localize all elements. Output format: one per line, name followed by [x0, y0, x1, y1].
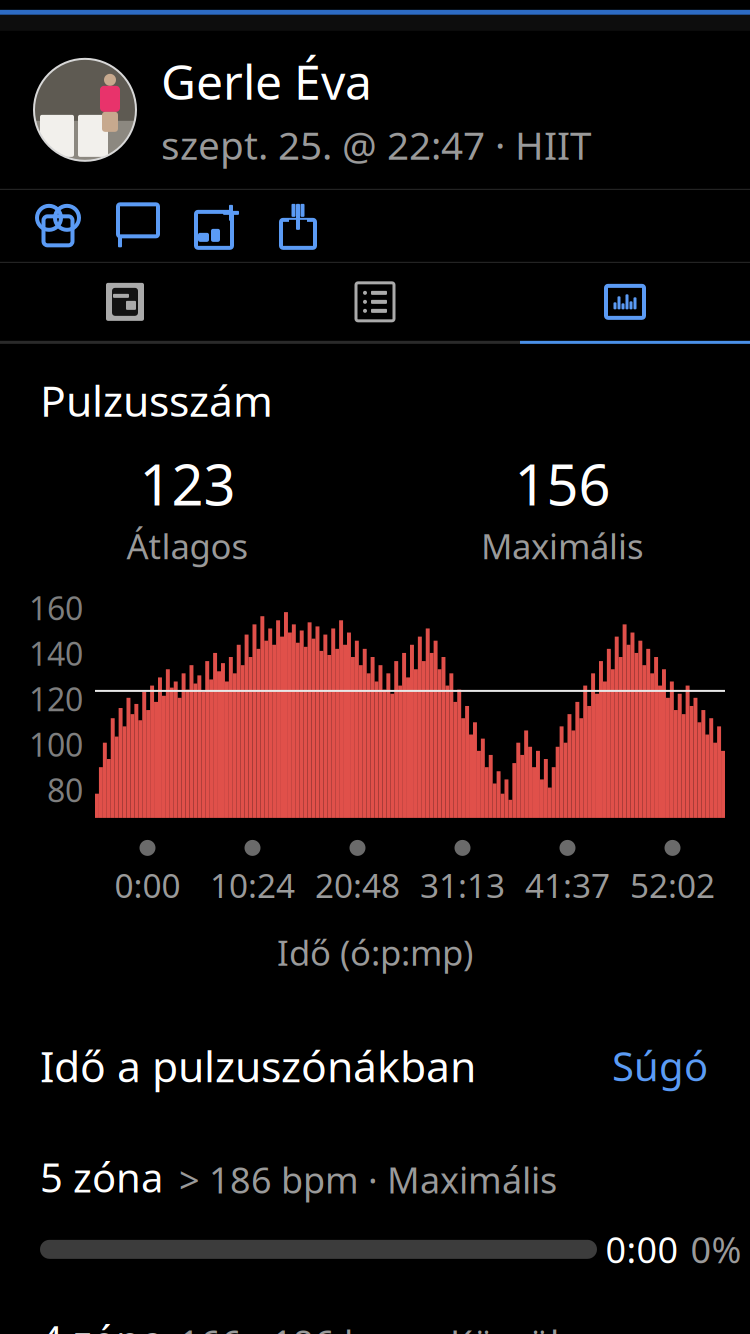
button[interactable]: Add photo — [178, 190, 258, 262]
button[interactable]: Gerle Éva — [0, 31, 750, 189]
staticText: Átlagos — [126, 523, 248, 569]
staticText: 123 — [139, 446, 235, 521]
staticText: 0% — [690, 1225, 741, 1273]
button[interactable]: Charts — [500, 263, 750, 341]
button[interactable]: Súgó — [602, 1031, 718, 1100]
staticText: 4 zóna — [40, 1313, 163, 1334]
staticText: 31:13 — [420, 863, 505, 907]
staticText: Pulzusszám — [40, 372, 273, 428]
button[interactable]: Comment — [98, 190, 178, 262]
staticText: Idő a pulzuszónákban — [40, 1037, 476, 1094]
button[interactable]: Like — [18, 190, 98, 262]
button[interactable]: Details — [250, 263, 500, 341]
button[interactable]: Share — [258, 190, 338, 262]
staticText: 156 — [514, 446, 610, 521]
button[interactable]: More options — [670, 0, 750, 10]
staticText: Súgó — [612, 1039, 708, 1092]
staticText: 52:02 — [630, 863, 715, 907]
staticText: Idő (ó:p:mp) — [277, 929, 473, 975]
staticText: > 186 bpm · Maximális — [179, 1156, 557, 1203]
staticText: Gerle Éva — [161, 49, 372, 113]
staticText: 5 zóna — [40, 1150, 163, 1203]
staticText: 140 — [29, 632, 83, 675]
staticText: 20:48 — [315, 863, 400, 907]
staticText: 0:00 — [605, 1225, 678, 1273]
staticText: Maximális — [481, 523, 644, 569]
staticText: 41:37 — [525, 863, 610, 907]
staticText: szept. 25. @ 22:47 · HIIT — [161, 119, 591, 170]
button[interactable]: Map — [0, 263, 250, 341]
staticText: 166 - 186 bpm · Küszöb — [179, 1319, 572, 1334]
staticText: 100 — [29, 723, 83, 766]
staticText: 80 — [47, 769, 83, 811]
staticText: 160 — [29, 587, 83, 629]
button[interactable]: Back — [0, 0, 80, 10]
staticText: 10:24 — [210, 863, 295, 907]
staticText: 120 — [29, 678, 83, 720]
staticText: 0:00 — [114, 863, 180, 907]
